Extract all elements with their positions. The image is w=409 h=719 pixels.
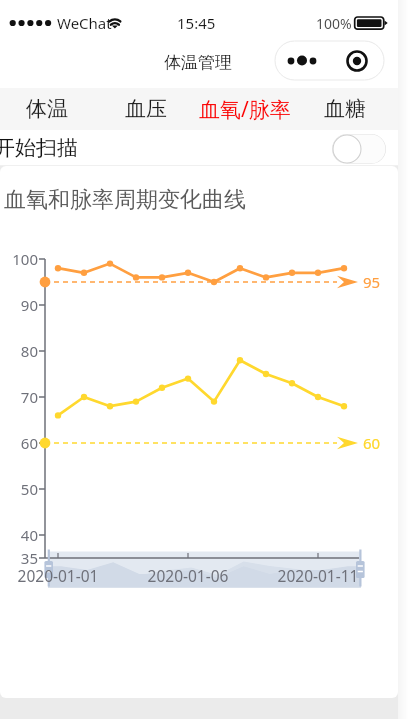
staticText: 2020-01-06 xyxy=(128,565,248,586)
staticText: 60 xyxy=(363,433,381,453)
staticText: 2020-01-01 xyxy=(0,565,118,586)
staticText: 血氧/脉率 xyxy=(199,95,291,124)
staticText: 40 xyxy=(0,525,38,545)
staticText: 100 xyxy=(0,249,38,269)
staticText: 80 xyxy=(0,341,38,361)
button[interactable]: 血氧/脉率 xyxy=(195,88,295,130)
staticText: 血压 xyxy=(125,96,167,122)
staticText: 70 xyxy=(0,387,38,407)
staticText: 开始扫描 xyxy=(0,135,78,161)
button[interactable]: 体温 xyxy=(0,88,96,130)
staticText: 35 xyxy=(0,548,38,568)
staticText: 血氧和脉率周期变化曲线 xyxy=(4,186,246,214)
staticText: 90 xyxy=(0,295,38,315)
staticText: 50 xyxy=(0,479,38,499)
staticText: 体温管理 xyxy=(164,52,232,73)
button[interactable]: More options xyxy=(275,41,329,80)
staticText: 15:45 xyxy=(177,13,216,33)
button[interactable]: 血糖 xyxy=(295,88,395,130)
staticText: 2020-01-11 xyxy=(258,565,378,586)
staticText: 100% xyxy=(316,14,352,33)
button[interactable]: Close mini program xyxy=(329,41,384,80)
button[interactable]: Toggle start scanning xyxy=(332,134,386,164)
staticText: 体温 xyxy=(26,96,68,122)
button[interactable]: 血压 xyxy=(96,88,195,130)
staticText: WeChat xyxy=(57,13,112,33)
staticText: 血糖 xyxy=(324,96,366,122)
staticText: 95 xyxy=(363,272,381,292)
staticText: 60 xyxy=(0,433,38,453)
